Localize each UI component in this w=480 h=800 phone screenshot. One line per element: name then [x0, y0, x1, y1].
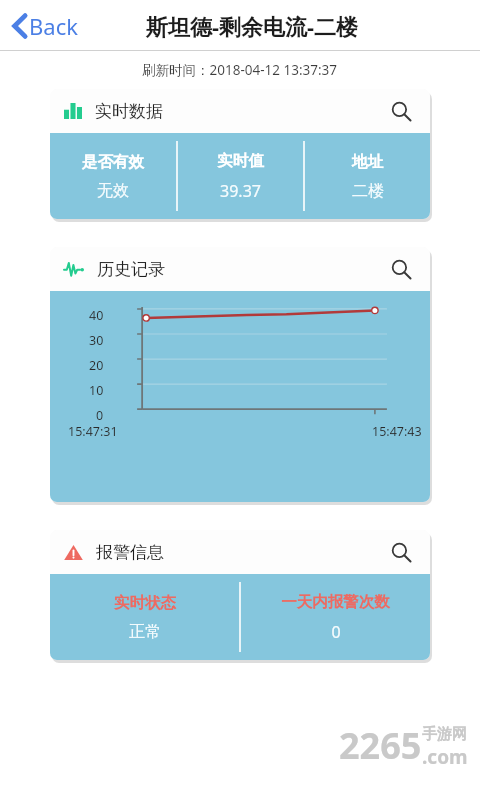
staticText: 实时值 [217, 151, 264, 171]
staticText: 20 [89, 357, 104, 374]
button[interactable]: Search [386, 537, 416, 567]
button[interactable]: 一天内报警次数 [241, 574, 430, 660]
button[interactable]: 历史记录 [50, 247, 430, 502]
staticText: .com [422, 744, 468, 770]
staticText: 15:47:31 [68, 423, 118, 440]
staticText: 实时数据 [95, 101, 163, 122]
button[interactable]: 实时数据 [50, 89, 430, 219]
staticText: 刷新时间：2018-04-12 13:37:37 [142, 61, 338, 79]
staticText: 二楼 [352, 181, 384, 201]
staticText: 40 [89, 307, 104, 324]
staticText: 0 [331, 621, 341, 643]
button[interactable]: 报警信息 [50, 530, 430, 660]
staticText: 报警信息 [96, 542, 164, 563]
staticText: 正常 [129, 622, 161, 642]
staticText: 15:47:43 [372, 423, 422, 440]
staticText: 30 [89, 332, 104, 349]
staticText: 实时状态 [114, 593, 176, 613]
button[interactable]: 实时值 [178, 133, 303, 219]
button[interactable]: 地址 [305, 133, 430, 219]
staticText: 无效 [97, 181, 129, 201]
staticText: 历史记录 [97, 259, 165, 280]
button[interactable]: Search [386, 254, 416, 284]
staticText: 0 [96, 407, 104, 424]
staticText: 一天内报警次数 [281, 592, 390, 612]
staticText: Back [29, 11, 78, 41]
staticText: 是否有效 [82, 152, 144, 172]
staticText: 10 [89, 382, 104, 399]
button[interactable]: 是否有效 [50, 133, 176, 219]
staticText: 斯坦德-剩余电流-二楼 [146, 11, 359, 41]
button[interactable]: 实时状态 [50, 574, 239, 660]
staticText: 地址 [352, 152, 383, 172]
staticText: 手游网 [422, 725, 467, 744]
staticText: 39.37 [220, 180, 261, 202]
button[interactable]: Back [8, 7, 82, 45]
button[interactable]: Search [386, 96, 416, 126]
staticText: 2265 [339, 721, 422, 770]
